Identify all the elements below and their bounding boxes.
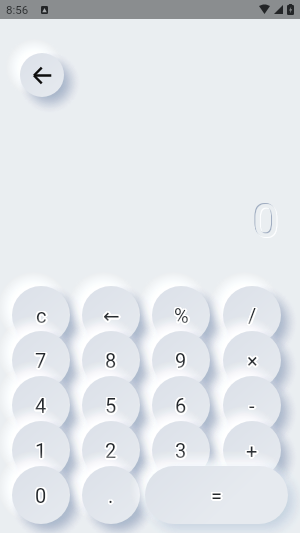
staticText: × (248, 348, 259, 371)
staticText: 3 (174, 439, 186, 462)
staticText: 2 (104, 438, 116, 461)
staticText: + (247, 438, 259, 461)
staticText: 3 (175, 439, 187, 462)
staticText: + (245, 440, 257, 463)
staticText: × (247, 349, 258, 372)
staticText: 3 (174, 440, 186, 463)
staticText: % (173, 305, 188, 328)
staticText: / (250, 304, 259, 327)
staticText: = (212, 485, 223, 508)
staticText: ← (104, 303, 121, 326)
staticText: c (37, 305, 48, 328)
button[interactable]: 9 (152, 331, 210, 389)
staticText: . (108, 486, 114, 509)
staticText: / (247, 304, 256, 327)
staticText: . (109, 483, 115, 506)
staticText: 4 (36, 395, 48, 418)
staticText: - (248, 395, 254, 418)
staticText: 8 (104, 349, 116, 372)
staticText: 6 (174, 393, 186, 416)
staticText: c (35, 305, 46, 328)
staticText: 1 (37, 439, 49, 462)
staticText: 0 (252, 193, 278, 245)
button[interactable]: 5 (82, 376, 140, 434)
staticText: - (248, 393, 254, 416)
staticText: 4 (34, 395, 46, 418)
button[interactable]: 7 (12, 331, 70, 389)
staticText: × (246, 350, 257, 373)
staticText: 5 (105, 393, 117, 416)
staticText: 3 (176, 440, 188, 463)
staticText: + (245, 438, 257, 461)
button[interactable]: 0 (12, 466, 70, 524)
staticText: 8 (105, 349, 117, 372)
staticText: 7 (36, 350, 48, 373)
staticText: ← (104, 303, 121, 326)
staticText: / (248, 303, 257, 326)
staticText: 6 (174, 395, 186, 418)
staticText: ← (104, 305, 121, 328)
staticText: 8 (105, 348, 117, 371)
staticText: 5 (104, 395, 116, 418)
staticText: 6 (174, 393, 186, 416)
button[interactable]: = (145, 466, 288, 524)
staticText: 0 (35, 484, 47, 507)
button[interactable]: 4 (12, 376, 70, 434)
staticText: × (248, 348, 259, 371)
staticText: + (245, 438, 257, 461)
staticText: = (211, 483, 222, 506)
button[interactable]: ← (82, 286, 140, 344)
staticText: × (247, 351, 258, 374)
staticText: c (38, 304, 49, 327)
staticText: 0 (254, 195, 280, 247)
staticText: 9 (174, 348, 186, 371)
staticText: . (107, 483, 113, 506)
staticText: 2 (106, 440, 118, 463)
staticText: . (107, 485, 113, 508)
staticText: 3 (175, 441, 187, 464)
staticText: 5 (105, 396, 117, 419)
staticText: . (109, 483, 115, 506)
staticText: % (174, 304, 189, 327)
staticText: 2 (106, 438, 118, 461)
staticText: 3 (174, 438, 186, 461)
staticText: 1 (36, 440, 48, 463)
button[interactable]: 6 (152, 376, 210, 434)
button[interactable]: × (223, 331, 281, 389)
button[interactable]: + (223, 421, 281, 479)
staticText: . (107, 484, 113, 507)
staticText: 8 (104, 348, 116, 371)
button[interactable]: / (223, 286, 281, 344)
staticText: 8 (106, 350, 118, 373)
button[interactable]: 2 (82, 421, 140, 479)
button[interactable]: Back (20, 53, 64, 97)
staticText: 5 (107, 394, 119, 417)
staticText: 9 (177, 349, 189, 372)
staticText: c (36, 303, 47, 326)
button[interactable]: 1 (12, 421, 70, 479)
staticText: 1 (34, 440, 46, 463)
staticText: . (108, 484, 114, 507)
staticText: % (173, 305, 188, 328)
staticText: c (35, 305, 46, 328)
button[interactable]: % (152, 286, 210, 344)
staticText: - (250, 395, 256, 418)
staticText: 7 (34, 350, 46, 373)
button[interactable]: c (12, 286, 70, 344)
staticText: 0 (34, 485, 46, 508)
staticText: × (248, 350, 259, 373)
button[interactable]: 3 (152, 421, 210, 479)
staticText: - (249, 393, 255, 416)
staticText: 5 (104, 394, 116, 417)
staticText: = (210, 485, 221, 508)
staticText: 5 (104, 395, 116, 418)
staticText: ← (103, 303, 120, 326)
staticText: 7 (36, 348, 48, 371)
staticText: 3 (176, 438, 188, 461)
button[interactable]: . (82, 466, 140, 524)
button[interactable]: 8 (82, 331, 140, 389)
staticText: = (212, 485, 223, 508)
staticText: 2 (104, 440, 116, 463)
button[interactable]: - (223, 376, 281, 434)
staticText: 6 (175, 393, 187, 416)
